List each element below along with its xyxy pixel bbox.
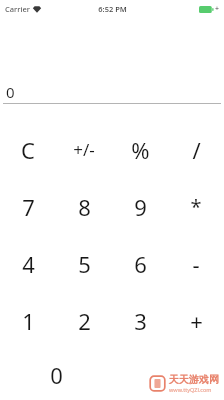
button[interactable]: 9	[112, 178, 168, 235]
staticText: +	[215, 4, 220, 14]
staticText: 6	[134, 249, 147, 279]
staticText: 7	[22, 192, 35, 222]
staticText: *	[190, 193, 202, 220]
button[interactable]: Toggle sign	[56, 121, 112, 178]
button[interactable]: Divide	[168, 121, 224, 178]
staticText: 1	[22, 306, 35, 336]
staticText: C	[21, 135, 35, 165]
button[interactable]: Subtract	[168, 235, 224, 292]
staticText: 9	[134, 192, 147, 222]
staticText: 5	[78, 249, 91, 279]
button[interactable]: Multiply	[168, 178, 224, 235]
button[interactable]: 1	[0, 292, 56, 349]
staticText: -	[192, 249, 200, 279]
staticText: 2	[78, 306, 91, 336]
staticText: Carrier	[5, 4, 30, 14]
button[interactable]: Add	[168, 292, 224, 349]
button[interactable]: Percent	[112, 121, 168, 178]
staticText: 4	[22, 249, 35, 279]
button[interactable]: 8	[56, 178, 112, 235]
staticText: /	[192, 135, 201, 165]
staticText: 0	[50, 360, 63, 390]
staticText: 6:52 PM	[98, 4, 127, 14]
button[interactable]: 2	[56, 292, 112, 349]
button[interactable]: 4	[0, 235, 56, 292]
staticText: 8	[78, 192, 91, 222]
button[interactable]: 6	[112, 235, 168, 292]
staticText: 3	[134, 306, 147, 336]
button[interactable]: 5	[56, 235, 112, 292]
button[interactable]: 0	[0, 349, 112, 400]
staticText: 天天游戏网	[169, 373, 219, 386]
staticText: www.ttyQZl.com	[169, 386, 212, 393]
staticText: %	[131, 135, 150, 165]
staticText: +	[190, 306, 203, 336]
staticText: 0	[6, 82, 15, 102]
staticText: +/-	[73, 138, 95, 161]
button[interactable]: 3	[112, 292, 168, 349]
button[interactable]: Clear	[0, 121, 56, 178]
button[interactable]: 7	[0, 178, 56, 235]
